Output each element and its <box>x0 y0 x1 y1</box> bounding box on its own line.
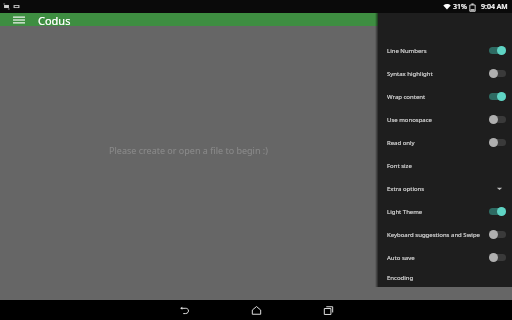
staticText: Encoding <box>387 274 414 282</box>
button[interactable]: Wrap content <box>378 85 512 108</box>
button[interactable]: Use monospace <box>378 108 512 131</box>
button[interactable]: Off <box>489 138 506 147</box>
staticText: Light Theme <box>387 208 489 216</box>
button[interactable]: Off <box>489 115 506 124</box>
staticText: Auto save <box>387 254 489 262</box>
button[interactable]: Keyboard suggestions and Swipe <box>378 223 512 246</box>
button[interactable]: Back <box>174 300 194 320</box>
button[interactable]: On <box>489 207 506 216</box>
button[interactable]: Off <box>489 230 506 239</box>
button[interactable]: Line Numbers <box>378 39 512 62</box>
staticText: Line Numbers <box>387 47 489 55</box>
button[interactable]: Home <box>246 300 266 320</box>
button[interactable]: Off <box>489 253 506 262</box>
button[interactable]: Auto save <box>378 246 512 269</box>
button[interactable]: Read only <box>378 131 512 154</box>
button[interactable]: On <box>489 46 506 55</box>
button[interactable]: Syntax highlight <box>378 62 512 85</box>
staticText: Use monospace <box>387 116 489 124</box>
button[interactable]: Encoding <box>378 269 512 287</box>
button[interactable]: Off <box>489 69 506 78</box>
button[interactable]: Light Theme <box>378 200 512 223</box>
staticText: Read only <box>387 139 489 147</box>
staticText: Syntax highlight <box>387 70 489 78</box>
staticText: 31% <box>453 2 467 12</box>
button[interactable]: Extra options <box>378 177 512 200</box>
button[interactable]: On <box>489 92 506 101</box>
staticText: Please create or open a file to begin :) <box>109 144 268 156</box>
button[interactable]: Font size <box>378 154 512 177</box>
staticText: Extra options <box>387 185 496 193</box>
staticText: Keyboard suggestions and Swipe <box>387 231 489 239</box>
button[interactable]: Open navigation drawer <box>8 13 30 26</box>
staticText: 9:04 AM <box>481 2 508 12</box>
staticText: Codus <box>38 13 71 26</box>
staticText: Font size <box>387 162 412 170</box>
button[interactable]: Recent apps <box>318 300 338 320</box>
staticText: Wrap content <box>387 93 489 101</box>
